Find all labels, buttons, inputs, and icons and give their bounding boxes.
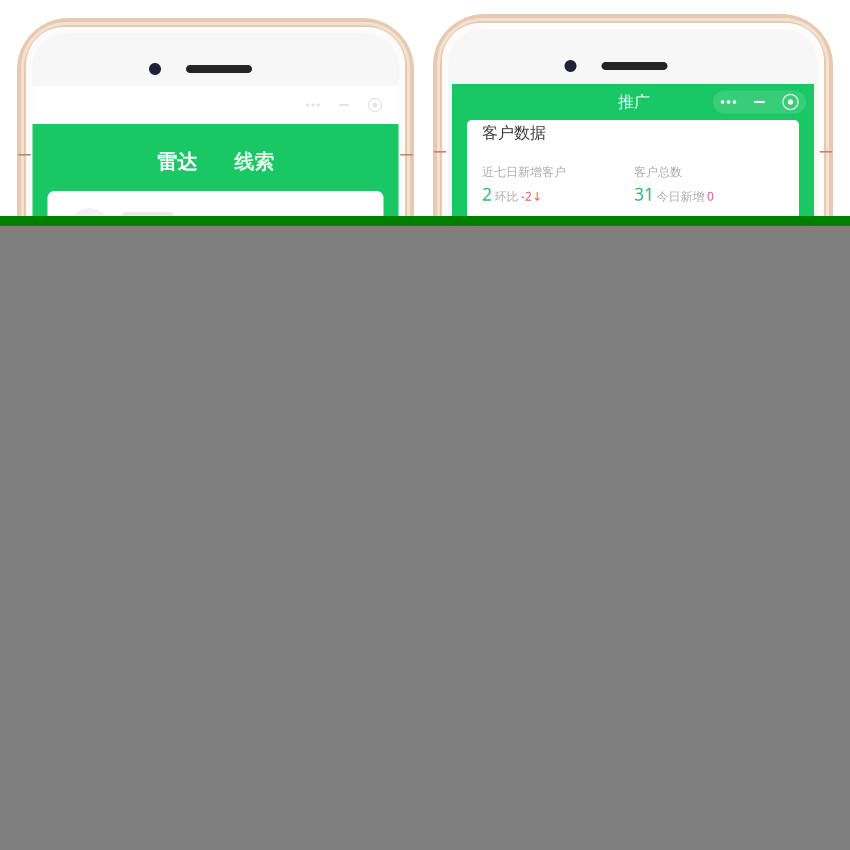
button[interactable]: Minimize (744, 90, 775, 113)
staticText: 客户数据 (482, 123, 546, 143)
staticText: 2 (482, 182, 492, 205)
staticText: -2↓ (521, 188, 542, 204)
button[interactable]: 线索 (226, 144, 282, 180)
staticText: 0 (707, 188, 714, 204)
button[interactable]: Minimize (328, 94, 359, 116)
button[interactable]: 雷达 (149, 144, 205, 180)
staticText: 推广 (618, 92, 650, 112)
staticText: 线索 (234, 150, 274, 174)
staticText: 环比 (494, 189, 518, 204)
staticText: 雷达 (157, 150, 197, 174)
staticText: 今日新增 (656, 189, 704, 204)
button[interactable]: More (713, 90, 744, 113)
button[interactable]: More (297, 94, 328, 116)
button[interactable]: Close (775, 90, 806, 113)
staticText: 31 (634, 182, 654, 205)
staticText: 近七日新增客户 (482, 165, 566, 179)
button[interactable]: Close (359, 94, 390, 116)
staticText: 客户总数 (634, 165, 682, 179)
